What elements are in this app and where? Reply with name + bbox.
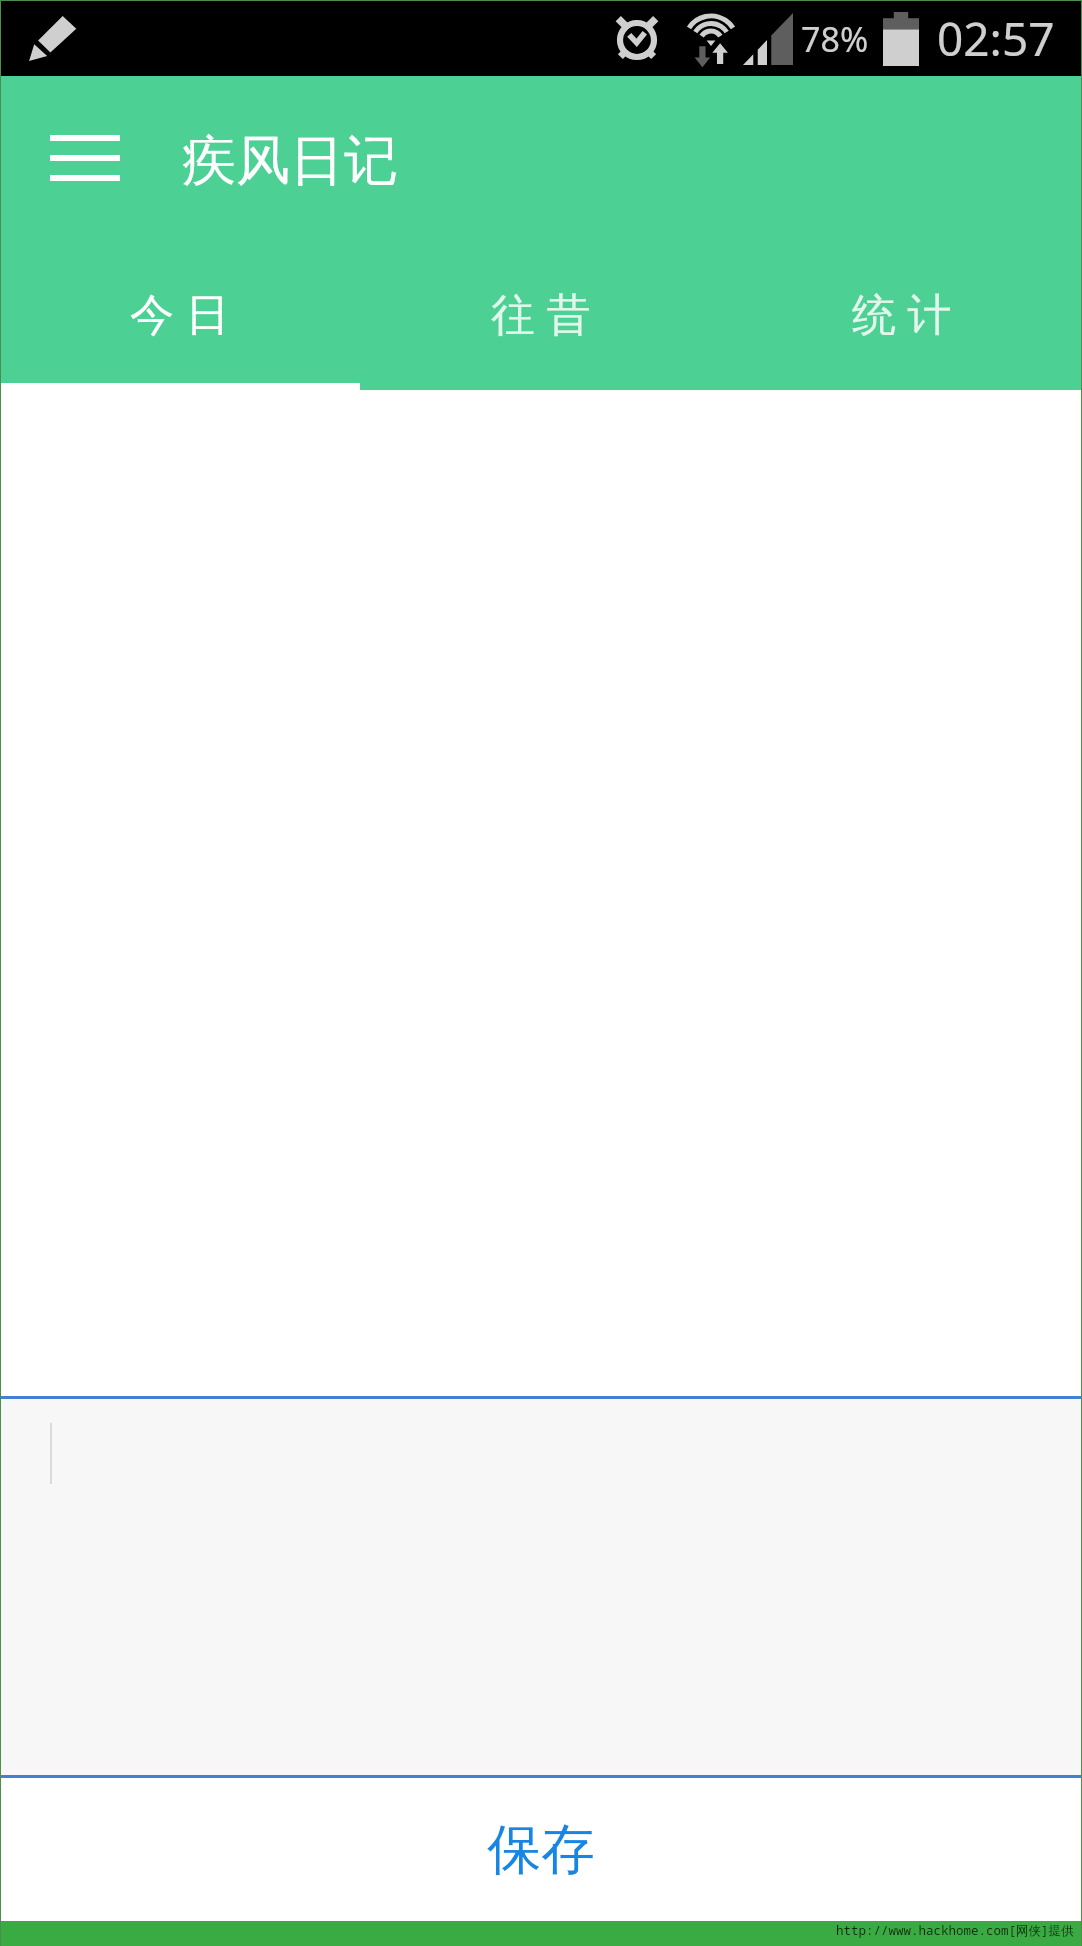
staticText: 疾风日记 bbox=[182, 127, 398, 195]
button[interactable]: 统 计 bbox=[721, 240, 1082, 390]
staticText: 今 日 bbox=[130, 283, 230, 343]
button[interactable]: 往 昔 bbox=[360, 240, 721, 390]
button[interactable]: 保存 bbox=[0, 1778, 1082, 1921]
button[interactable]: 今 日 bbox=[0, 240, 360, 390]
staticText: 02:57 bbox=[937, 7, 1055, 70]
button[interactable]: Menu bbox=[30, 108, 140, 208]
staticText: 78% bbox=[801, 16, 869, 62]
staticText: 往 昔 bbox=[491, 283, 591, 343]
button[interactable]: Note input bbox=[0, 1399, 1082, 1775]
staticText: 保存 bbox=[487, 1816, 595, 1884]
staticText: 统 计 bbox=[852, 283, 952, 343]
button[interactable]: Diary content bbox=[0, 390, 1082, 1396]
staticText: http://www.hackhome.com[网侠]提供 bbox=[836, 1922, 1074, 1939]
